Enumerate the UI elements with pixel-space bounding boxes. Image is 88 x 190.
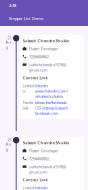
staticText: Contact Link — [22, 177, 47, 182]
staticText: Facebook — [22, 100, 33, 110]
staticText: Flutter Developer — [29, 46, 59, 51]
button[interactable]: subhshchandra1578@ gmail.com — [22, 164, 80, 177]
staticText: linkedin — [34, 185, 47, 190]
button[interactable]: subhshchandra1578@ gmail.com — [22, 62, 80, 75]
staticText: in/subash-shukla — [34, 94, 62, 99]
button[interactable]: follow the/facebook — [34, 100, 66, 105]
staticText: Subash Chandra Shukla — [22, 140, 68, 145]
button[interactable]: 7258400802 — [22, 54, 80, 62]
staticText: Aug — [5, 39, 11, 50]
staticText: 21 — [7, 137, 11, 142]
staticText: 2:38 — [9, 3, 16, 8]
staticText: 123 settings/subash — [34, 105, 67, 110]
staticText: Flutter Developer — [29, 148, 59, 153]
staticText: Subash Chandra Shukla — [22, 38, 68, 43]
button[interactable]: linkedin — [34, 185, 47, 190]
button[interactable]: Flutter Developer — [22, 46, 80, 54]
staticText: Linked in — [22, 185, 33, 190]
staticText: 21 — [7, 35, 11, 40]
staticText: 7258400802 — [29, 54, 49, 59]
staticText: 7258400802 — [29, 156, 49, 161]
button[interactable]: 7258400802 — [22, 156, 80, 164]
staticText: linkedin — [34, 83, 47, 88]
button[interactable]: Flutter Developer — [22, 148, 80, 156]
button[interactable]: in/subash-shukla — [34, 94, 62, 99]
staticText: subhshchandra1578@ gmail.com — [29, 164, 67, 175]
staticText: facebook.com — [34, 110, 58, 116]
staticText: Aug — [5, 141, 11, 152]
button[interactable]: linkedin — [34, 83, 47, 88]
button[interactable]: www.linkedin.com/ — [34, 88, 67, 94]
staticText: subhshchandra1578@ gmail.com — [29, 62, 67, 73]
staticText: Contact Link — [22, 75, 47, 80]
staticText: www.linkedin.com/ — [34, 88, 67, 94]
button[interactable]: Subash Chandra Shukla — [19, 35, 83, 119]
button[interactable]: facebook.com — [34, 110, 58, 116]
button[interactable]: Subash Chandra Shukla — [19, 137, 83, 190]
button[interactable]: 123 settings/subash — [34, 105, 67, 110]
staticText: Linked in — [22, 83, 33, 94]
staticText: follow the/facebook — [34, 100, 66, 105]
staticText: Stepper List Demo — [9, 16, 43, 21]
